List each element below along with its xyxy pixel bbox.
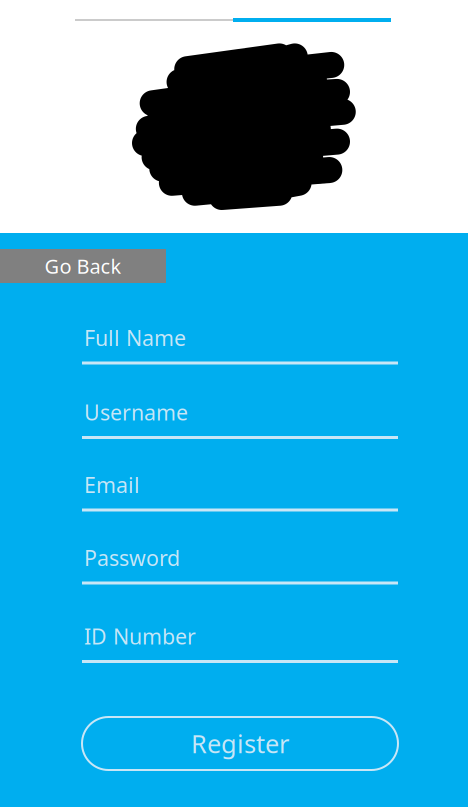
staticText: Full Name — [84, 323, 186, 352]
staticText: Username — [84, 398, 188, 426]
button[interactable]: Register — [82, 717, 398, 770]
button[interactable]: Email — [82, 470, 398, 511]
button[interactable]: Full Name — [82, 323, 398, 364]
staticText: Go Back — [44, 253, 121, 279]
staticText: Email — [84, 470, 140, 499]
button[interactable]: ID Number — [82, 622, 398, 663]
staticText: ID Number — [84, 622, 196, 650]
staticText: Register — [191, 727, 289, 760]
staticText: Password — [84, 543, 180, 572]
button[interactable]: Username — [82, 398, 398, 439]
button[interactable]: Password — [82, 543, 398, 584]
button[interactable]: Go Back — [0, 249, 166, 283]
